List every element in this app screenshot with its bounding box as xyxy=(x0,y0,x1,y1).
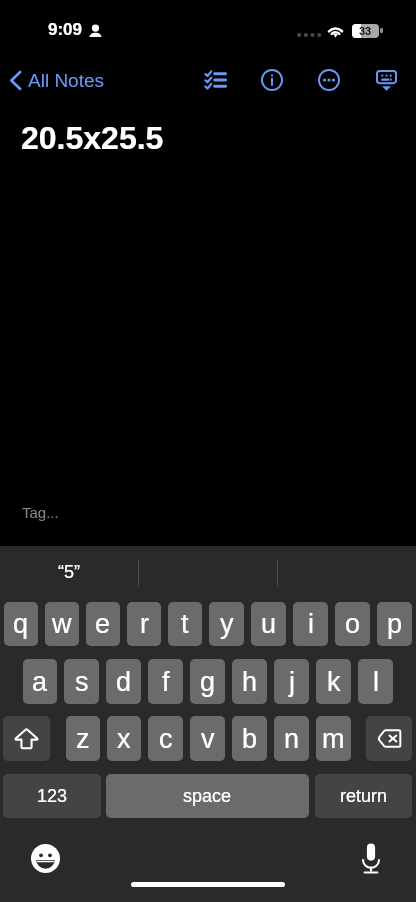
staticText: x xyxy=(117,724,131,754)
button[interactable]: f xyxy=(148,659,183,704)
staticText: i xyxy=(308,609,314,639)
button[interactable]: d xyxy=(106,659,141,704)
button[interactable]: Checklist xyxy=(198,62,232,98)
button[interactable]: q xyxy=(4,602,38,646)
button[interactable]: Hide keyboard xyxy=(369,62,403,98)
button[interactable]: s xyxy=(64,659,99,704)
staticText: s xyxy=(75,667,89,697)
staticText: v xyxy=(201,724,215,754)
staticText: h xyxy=(242,667,258,697)
staticText: w xyxy=(52,609,72,639)
staticText: k xyxy=(327,667,341,697)
button[interactable]: r xyxy=(127,602,161,646)
button[interactable]: Backspace xyxy=(366,716,412,761)
staticText: l xyxy=(373,667,379,697)
staticText: z xyxy=(76,724,90,754)
button[interactable]: b xyxy=(232,716,267,761)
button[interactable]: i xyxy=(293,602,328,646)
staticText: a xyxy=(32,667,48,697)
staticText: m xyxy=(322,724,345,754)
button[interactable]: 123 xyxy=(3,774,101,818)
staticText: n xyxy=(284,724,300,754)
button[interactable]: “5” xyxy=(0,546,138,598)
staticText: r xyxy=(140,609,149,639)
staticText: f xyxy=(162,667,170,697)
staticText: q xyxy=(13,609,29,639)
button[interactable]: x xyxy=(107,716,141,761)
button[interactable]: k xyxy=(316,659,351,704)
button[interactable]: t xyxy=(168,602,202,646)
staticText: u xyxy=(261,609,277,639)
button[interactable]: o xyxy=(335,602,370,646)
staticText: p xyxy=(387,609,403,639)
staticText: 123 xyxy=(37,786,68,806)
button[interactable]: l xyxy=(358,659,393,704)
staticText: o xyxy=(345,609,361,639)
button[interactable]: z xyxy=(66,716,100,761)
button[interactable]: Emoji xyxy=(28,841,62,875)
button[interactable]: All Notes xyxy=(6,66,108,95)
button[interactable]: w xyxy=(45,602,79,646)
button[interactable]: Dictation xyxy=(354,841,388,875)
staticText: t xyxy=(181,609,189,639)
staticText: “5” xyxy=(58,562,80,582)
button[interactable]: m xyxy=(316,716,351,761)
staticText: Tag... xyxy=(22,504,59,521)
staticText: j xyxy=(289,667,295,697)
staticText: c xyxy=(159,724,173,754)
staticText: b xyxy=(242,724,258,754)
button[interactable]: y xyxy=(209,602,244,646)
staticText: return xyxy=(340,786,388,806)
button[interactable]: v xyxy=(190,716,225,761)
staticText: 9:09 xyxy=(48,20,83,39)
button[interactable]: h xyxy=(232,659,267,704)
staticText: space xyxy=(183,786,232,806)
button[interactable]: g xyxy=(190,659,225,704)
button[interactable]: u xyxy=(251,602,286,646)
staticText: 20.5x25.5 xyxy=(21,120,164,156)
button[interactable]: j xyxy=(274,659,309,704)
button[interactable]: Shift xyxy=(3,716,50,761)
staticText: e xyxy=(95,609,111,639)
staticText: 33 xyxy=(359,25,372,37)
button[interactable]: n xyxy=(274,716,309,761)
button[interactable]: c xyxy=(148,716,183,761)
button[interactable]: e xyxy=(86,602,120,646)
button[interactable]: More options xyxy=(312,62,346,98)
staticText: y xyxy=(220,609,234,639)
button[interactable]: p xyxy=(377,602,412,646)
staticText: All Notes xyxy=(28,70,105,91)
button[interactable]: a xyxy=(23,659,57,704)
staticText: g xyxy=(200,667,216,697)
button[interactable]: space xyxy=(106,774,309,818)
button[interactable]: return xyxy=(315,774,412,818)
staticText: d xyxy=(116,667,132,697)
button[interactable]: Info xyxy=(255,62,289,98)
